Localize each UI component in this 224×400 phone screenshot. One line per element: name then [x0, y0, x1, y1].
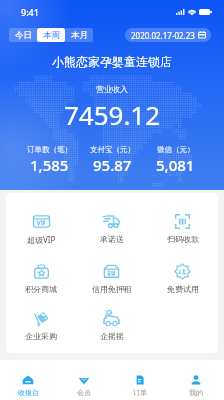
- button[interactable]: 超级VIP: [6, 213, 76, 245]
- staticText: 9:41: [21, 6, 39, 18]
- staticText: 积分商城: [25, 284, 57, 294]
- staticText: 会员: [77, 388, 91, 397]
- button[interactable]: 我的: [168, 374, 224, 397]
- button[interactable]: 本月: [65, 28, 93, 42]
- button[interactable]: 今日: [9, 28, 37, 42]
- staticText: 微信（元）: [157, 145, 195, 154]
- button[interactable]: 承诺送: [76, 213, 147, 244]
- staticText: 订单: [133, 388, 147, 397]
- staticText: 我的: [189, 388, 203, 397]
- button[interactable]: 2020.02.17-02.23: [125, 28, 211, 42]
- staticText: 收银台: [18, 388, 39, 397]
- staticText: 今日: [15, 30, 32, 41]
- button[interactable]: 本周: [37, 28, 65, 42]
- button[interactable]: 企业采购: [6, 310, 76, 341]
- button[interactable]: 免费试用: [147, 263, 218, 294]
- staticText: 支付宝（元）: [90, 145, 135, 154]
- staticText: 营业收入: [0, 84, 224, 94]
- staticText: 小熊恋家孕婴童连锁店: [0, 54, 224, 69]
- staticText: 1,585: [30, 155, 69, 175]
- staticText: 95.87: [93, 155, 132, 175]
- button[interactable]: 收银台: [0, 374, 56, 397]
- button[interactable]: 扫码收款: [147, 213, 218, 244]
- staticText: 扫码收款: [167, 234, 199, 244]
- button[interactable]: 积分商城: [6, 263, 76, 294]
- staticText: 2020.02.17-02.23: [131, 30, 195, 41]
- staticText: 免费试用: [167, 284, 199, 294]
- staticText: 信用免押租: [92, 284, 132, 294]
- staticText: 本周: [43, 30, 60, 41]
- staticText: 承诺送: [100, 234, 124, 244]
- staticText: 超级VIP: [27, 234, 56, 245]
- staticText: 本月: [71, 30, 88, 41]
- button[interactable]: 企摇摇: [76, 310, 147, 341]
- staticText: 企摇摇: [100, 331, 124, 341]
- staticText: 5,081: [156, 155, 195, 175]
- button[interactable]: 信用免押租: [76, 263, 147, 294]
- staticText: 企业采购: [25, 331, 57, 341]
- button[interactable]: 会员: [56, 374, 112, 397]
- staticText: 7459.12: [0, 97, 224, 132]
- button[interactable]: 订单: [112, 374, 168, 397]
- staticText: 订单数（笔）: [27, 145, 72, 154]
